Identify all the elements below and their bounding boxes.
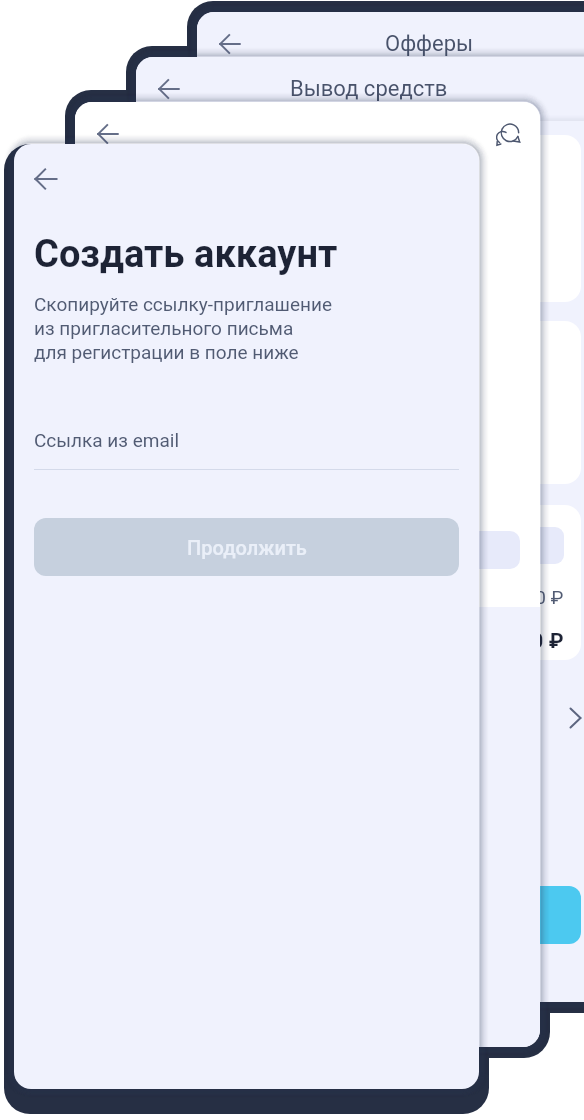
button[interactable]: [156, 886, 581, 944]
button[interactable]: Back: [95, 121, 121, 147]
button[interactable]: [217, 432, 584, 584]
button[interactable]: [156, 321, 581, 484]
staticText: Сумма к выводу: [180, 535, 319, 556]
button[interactable]: История выплат: [156, 698, 581, 738]
staticText: 150 ₽: [514, 586, 564, 608]
button[interactable]: Продолжить: [34, 518, 459, 576]
button[interactable]: Back: [33, 166, 59, 192]
button[interactable]: [217, 602, 584, 754]
staticText: Скопируйте ссылку-приглашение из приглас…: [34, 293, 333, 364]
button[interactable]: Back: [156, 76, 182, 102]
staticText: 4 850 ₽: [490, 629, 564, 654]
button[interactable]: [217, 772, 584, 924]
staticText: Продолжить: [187, 536, 307, 559]
staticText: Ссылка из email: [34, 429, 180, 451]
button[interactable]: [156, 135, 581, 302]
staticText: Создать аккаунт: [34, 232, 338, 277]
button[interactable]: Back: [217, 31, 243, 57]
button[interactable]: Support chat: [495, 121, 521, 147]
staticText: Вывод средств: [290, 76, 448, 102]
button[interactable]: [217, 92, 584, 244]
staticText: Офферы: [385, 31, 474, 57]
button[interactable]: [217, 262, 584, 414]
